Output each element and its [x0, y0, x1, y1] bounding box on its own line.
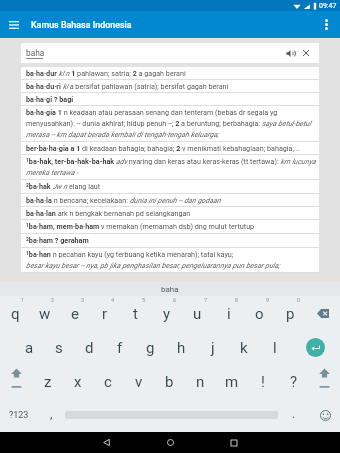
staticText: u [193, 305, 202, 323]
button[interactable]: . [278, 398, 310, 432]
staticText: 1ba·han n pecahan kayu (yg terbuang keti… [26, 250, 280, 270]
button[interactable]: h [166, 330, 197, 364]
staticText: ba·ha·gi ? bagi [26, 95, 74, 103]
button[interactable]: e [60, 296, 90, 330]
button[interactable]: ba·ha·gia 1 n keadaan atau perasaan sena… [21, 106, 319, 142]
button[interactable]: ba·ha·la n bencana; kecelakaan: dunia in… [21, 194, 319, 207]
button[interactable]: i [213, 296, 244, 330]
staticText: ! [261, 373, 265, 391]
staticText: k [240, 339, 248, 357]
button[interactable]: 2ba·ham ? geraham [21, 234, 319, 248]
button[interactable]: ?123 [0, 398, 38, 432]
staticText: a [25, 339, 34, 357]
button[interactable]: ba·ha·lan ark n bengkak bernanah pd sela… [21, 207, 319, 220]
staticText: baha [161, 285, 179, 294]
button[interactable]: w [30, 296, 60, 330]
button[interactable]: 1ba·ham, mem·ba·ham v memakan (memamah d… [21, 220, 319, 234]
button[interactable]: Shift [0, 364, 33, 398]
button[interactable]: 1ba·han n pecahan kayu (yg terbuang keti… [21, 248, 319, 273]
staticText: d [85, 339, 94, 357]
button[interactable]: z [33, 364, 63, 398]
button[interactable]: More options [313, 11, 340, 38]
button[interactable]: 1ba-hak, ter-ba-hak-ba-hak adv nyaring d… [21, 155, 319, 180]
staticText: 8 [235, 297, 239, 303]
button[interactable]: q [0, 296, 30, 330]
button[interactable]: a [14, 330, 44, 364]
button[interactable]: v [123, 364, 154, 398]
button[interactable]: u [182, 296, 213, 330]
staticText: , [50, 407, 53, 421]
staticText: 4 [111, 297, 115, 303]
staticText: h [177, 339, 186, 357]
button[interactable]: Open navigation menu [0, 11, 27, 38]
button[interactable]: Shift [309, 364, 340, 398]
staticText: Kamus Bahasa Indonesia [31, 20, 132, 30]
button[interactable]: g [135, 330, 166, 364]
button[interactable]: ba·ha·dur kl n 1 pahlawan; satria; 2 a g… [21, 67, 319, 80]
button[interactable]: c [93, 364, 123, 398]
button[interactable]: ? [278, 364, 309, 398]
button[interactable]: Pronounce [282, 43, 298, 63]
button[interactable]: f [104, 330, 135, 364]
staticText: v [135, 373, 143, 391]
staticText: z [44, 373, 52, 391]
staticText: i [227, 305, 231, 323]
staticText: ba·ha·dur kl n 1 pahlawan; satria; 2 a g… [26, 69, 186, 77]
staticText: baha [26, 48, 45, 58]
button[interactable]: b [154, 364, 185, 398]
staticText: 5 [142, 297, 146, 303]
button[interactable]: k [228, 330, 259, 364]
button[interactable]: t [120, 296, 151, 330]
staticText: 7 [204, 297, 208, 303]
staticText: 9 [266, 297, 270, 303]
button[interactable]: j [197, 330, 228, 364]
button[interactable]: Emoji [310, 398, 340, 432]
button[interactable]: m [216, 364, 247, 398]
staticText: ber·ba·ha·gia a 1 dl keadaan bahagia; ba… [26, 144, 300, 152]
button[interactable]: Enter [290, 330, 340, 364]
button[interactable]: d [74, 330, 104, 364]
button[interactable]: x [63, 364, 93, 398]
staticText: 1ba·ham, mem·ba·ham v memakan (memamah d… [26, 222, 255, 231]
staticText: r [102, 305, 108, 323]
staticText: e [71, 305, 79, 323]
staticText: c [104, 373, 112, 391]
button[interactable]: ! [247, 364, 278, 398]
button[interactable]: Space [65, 398, 278, 432]
button[interactable]: p [275, 296, 306, 330]
staticText: 1 [21, 297, 25, 303]
staticText: ?123 [9, 410, 29, 421]
staticText: 2 [51, 297, 55, 303]
button[interactable]: Recent apps [202, 432, 266, 453]
button[interactable]: r [90, 296, 120, 330]
staticText: ba·ha·gia 1 n keadaan atau perasaan sena… [26, 108, 317, 139]
button[interactable]: n [185, 364, 216, 398]
button[interactable]: s [44, 330, 74, 364]
staticText: o [255, 305, 264, 323]
button[interactable]: ba·ha·du·ri kl a bersifat pahlawan (satr… [21, 80, 319, 93]
staticText: 6 [173, 297, 177, 303]
button[interactable]: y [151, 296, 182, 330]
staticText: t [133, 305, 138, 323]
staticText: 0 [297, 297, 301, 303]
button[interactable]: Backspace [306, 296, 340, 330]
staticText: 2ba·hak Jw n elang laut [26, 182, 101, 191]
staticText: ba·ha·du·ri kl a bersifat pahlawan (satr… [26, 82, 229, 90]
staticText: 3 [81, 297, 85, 303]
staticText: l [273, 339, 277, 357]
button[interactable]: Back [74, 432, 138, 453]
staticText: q [11, 305, 20, 323]
button[interactable]: Clear search [298, 43, 314, 63]
button[interactable]: , [38, 398, 65, 432]
button[interactable]: ber·ba·ha·gia a 1 dl keadaan bahagia; ba… [21, 142, 319, 155]
button[interactable]: o [244, 296, 275, 330]
staticText: ba·ha·lan ark n bengkak bernanah pd sela… [26, 209, 191, 217]
staticText: p [286, 305, 295, 323]
button[interactable]: l [259, 330, 290, 364]
button[interactable]: ba·ha·gi ? bagi [21, 93, 319, 106]
staticText: f [117, 339, 123, 357]
staticText: n [196, 373, 205, 391]
staticText: . [292, 407, 296, 421]
button[interactable]: Home [138, 432, 202, 453]
button[interactable]: 2ba·hak Jw n elang laut [21, 180, 319, 194]
